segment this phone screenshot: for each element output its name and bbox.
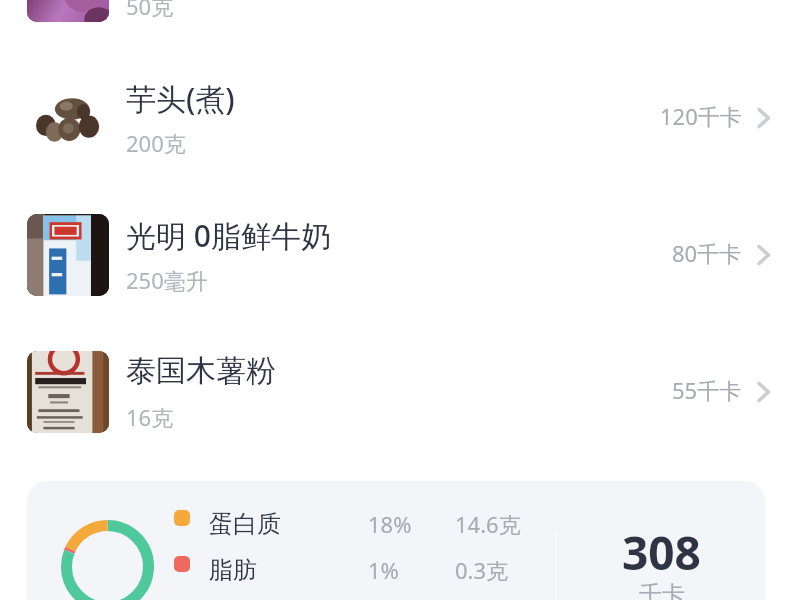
staticText: 308	[622, 521, 701, 584]
button[interactable]: 蛋白质	[27, 481, 765, 600]
staticText: 芋头(煮)	[126, 78, 235, 119]
staticText: 1%	[368, 555, 399, 585]
staticText: 120千卡	[660, 101, 742, 131]
staticText: 16克	[126, 402, 174, 432]
button[interactable]: 泰国木薯粉	[0, 351, 800, 433]
staticText: 14.6克	[455, 509, 521, 539]
button[interactable]: 查看详情	[757, 107, 771, 129]
staticText: 250毫升	[126, 265, 208, 295]
button[interactable]: 光明 0脂鲜牛奶	[0, 214, 800, 296]
staticText: 光明 0脂鲜牛奶	[126, 215, 331, 256]
staticText: 55千卡	[672, 375, 742, 405]
staticText: 18%	[368, 509, 412, 539]
staticText: 千卡	[639, 580, 685, 600]
staticText: 0.3克	[455, 555, 509, 585]
staticText: 80千卡	[672, 238, 742, 268]
staticText: 蛋白质	[209, 509, 281, 539]
staticText: 200克	[126, 128, 186, 158]
staticText: 脂肪	[209, 555, 257, 585]
button[interactable]: 芋头(煮)	[0, 77, 800, 159]
button[interactable]: 查看详情	[757, 244, 771, 266]
staticText: 50克	[126, 0, 174, 21]
staticText: 泰国木薯粉	[126, 352, 276, 390]
button[interactable]: 查看详情	[757, 381, 771, 403]
button[interactable]: 紫薯泥	[0, 0, 800, 22]
